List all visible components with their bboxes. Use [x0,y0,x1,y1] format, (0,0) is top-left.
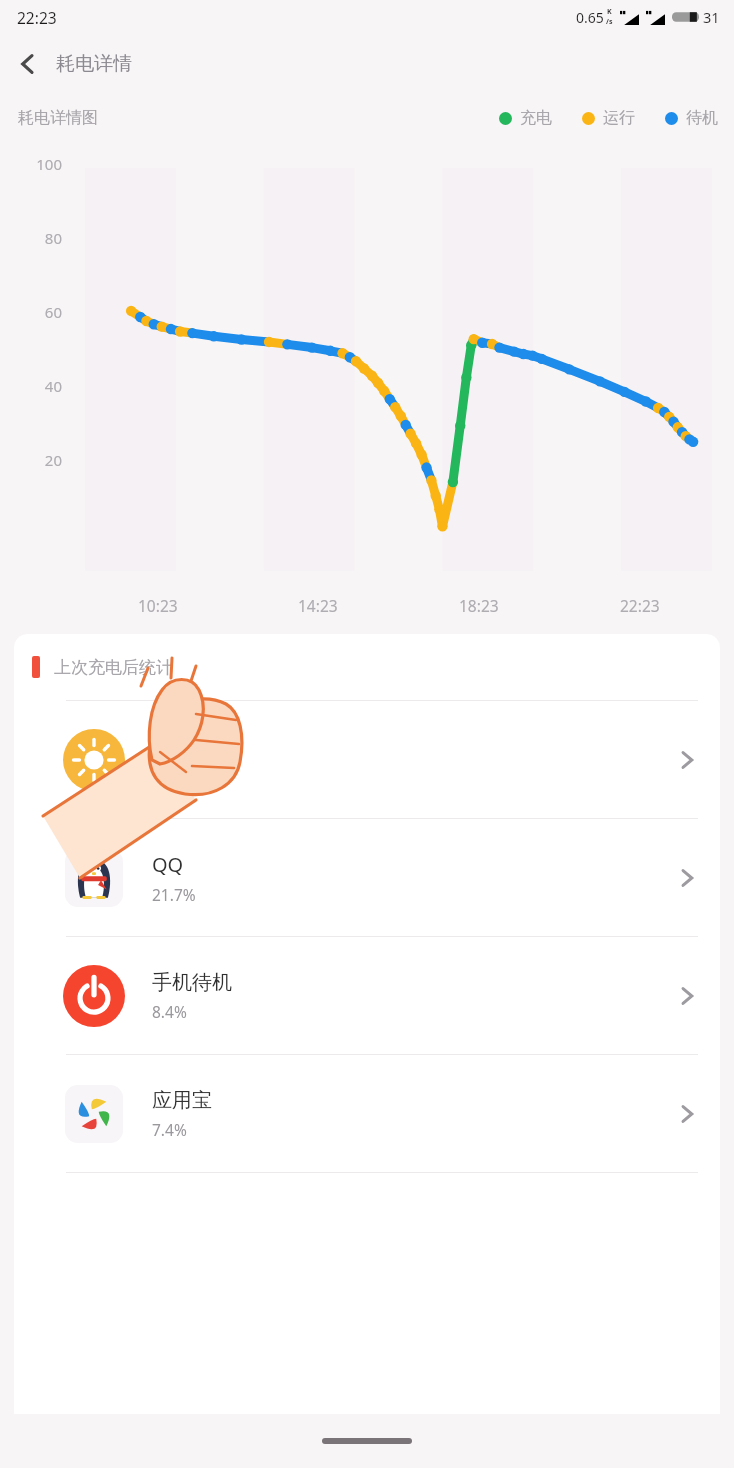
staticText: 18:23 [459,595,499,616]
staticText: 80 [0,228,62,248]
button[interactable]: QQ [14,819,720,936]
staticText: 手机待机 [152,970,232,995]
staticText: 8.4% [152,1001,187,1022]
staticText: 31 [703,7,720,27]
staticText: 20 [0,450,62,470]
staticText: 22:23 [17,7,57,28]
button[interactable]: 手机待机 [14,937,720,1054]
staticText: 21.7% [152,884,196,905]
staticText: 29.9% [152,765,196,786]
button[interactable]: 应用宝 [14,1055,720,1172]
staticText: 待机 [686,108,718,128]
staticText: /s [606,17,613,27]
staticText: K [607,7,612,17]
staticText: 22:23 [620,595,660,616]
staticText: 0.65 [576,8,604,27]
staticText: 上次充电后统计 [54,657,173,678]
staticText: QQ [152,851,184,878]
staticText: 60 [0,302,62,322]
staticText: 充电 [520,108,552,128]
staticText: 屏幕 [152,734,192,759]
staticText: 100 [0,154,62,174]
staticText: 40 [0,376,62,396]
staticText: 14:23 [298,595,338,616]
staticText: 耗电详情 [56,52,132,76]
staticText: 10:23 [138,595,178,616]
button[interactable]: Back [0,36,56,92]
staticText: 运行 [603,108,635,128]
button[interactable]: 屏幕 [14,701,720,818]
staticText: 耗电详情图 [18,108,98,128]
staticText: 7.4% [152,1119,187,1140]
staticText: 应用宝 [152,1088,212,1113]
